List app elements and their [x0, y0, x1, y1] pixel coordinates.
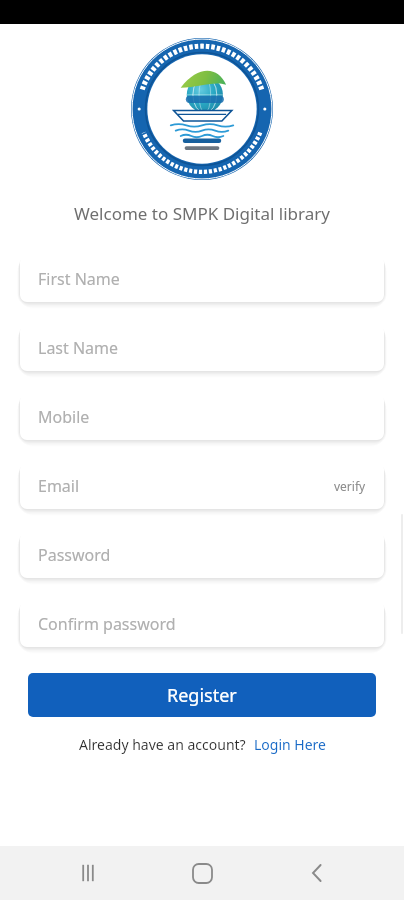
button[interactable]: Password: [20, 531, 384, 578]
button[interactable]: Home: [175, 846, 229, 900]
button[interactable]: Mobile: [20, 393, 384, 440]
button[interactable]: Register: [28, 673, 376, 717]
staticText: Welcome to SMPK Digital library: [74, 202, 330, 225]
other: SMPK Digital Library logo: [131, 38, 273, 180]
staticText: Login Here: [254, 735, 326, 754]
button[interactable]: First Name: [20, 255, 384, 302]
staticText: Email: [38, 475, 334, 497]
button[interactable]: Email: [20, 462, 384, 509]
staticText: Password: [38, 544, 366, 566]
staticText: Mobile: [38, 406, 366, 428]
staticText: Already have an account?: [79, 735, 246, 754]
staticText: verify: [334, 478, 366, 494]
staticText: First Name: [38, 268, 366, 290]
staticText: Last Name: [38, 337, 366, 359]
button[interactable]: Last Name: [20, 324, 384, 371]
button[interactable]: Login Here: [254, 735, 326, 754]
button[interactable]: Back: [290, 846, 344, 900]
button[interactable]: Recent apps: [61, 846, 115, 900]
staticText: Register: [167, 683, 237, 708]
button[interactable]: Confirm password: [20, 600, 384, 647]
staticText: Confirm password: [38, 613, 366, 635]
